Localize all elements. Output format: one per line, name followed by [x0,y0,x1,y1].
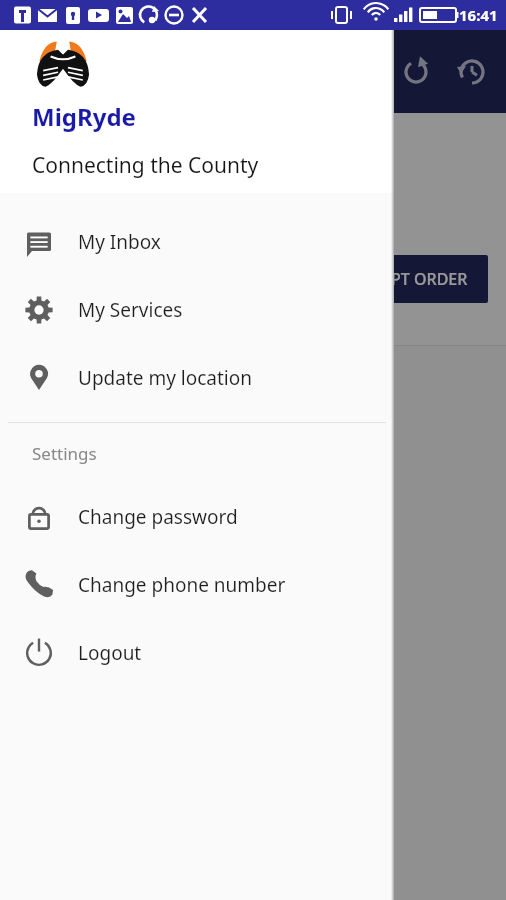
staticText: Change phone number [78,572,286,598]
staticText: Order ready for pickup. Kindly [24,141,264,164]
button[interactable]: My Inbox [0,208,394,276]
staticText: Logout [78,640,142,666]
button[interactable]: Refresh [394,50,438,94]
button[interactable]: Change phone number [0,551,394,619]
staticText: 16:41 [459,5,498,25]
button[interactable]: Update my location [0,344,394,412]
button[interactable]: History [450,50,494,94]
staticText: Connecting the County [32,151,259,180]
button[interactable]: Logout [0,619,394,687]
staticText: My Services [78,297,183,323]
staticText: confirm before 12-06-2019 [24,170,237,193]
staticText: MigRyde [32,100,136,133]
button[interactable]: My Services [0,276,394,344]
staticText: Update my location [78,365,253,391]
staticText: Change password [78,504,238,530]
button[interactable]: ACCEPT ORDER [332,255,488,303]
staticText: Settings [32,442,97,465]
button[interactable]: Change password [0,483,394,551]
staticText: ACCEPT ORDER [352,268,468,290]
staticText: My Inbox [78,229,161,255]
